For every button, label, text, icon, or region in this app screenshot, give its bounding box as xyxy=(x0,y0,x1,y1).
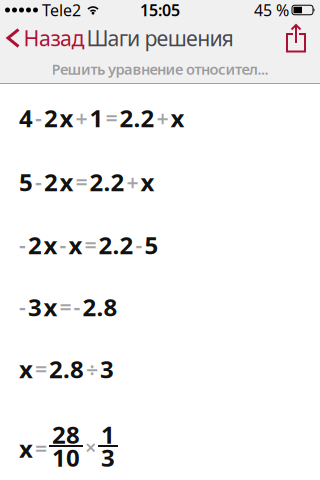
staticText: x xyxy=(140,166,154,198)
staticText: - xyxy=(73,293,80,321)
staticText: 45 % xyxy=(254,0,289,21)
staticText: 2 xyxy=(44,102,58,134)
staticText: 5 xyxy=(19,166,33,198)
staticText: = xyxy=(59,293,71,321)
staticText: x xyxy=(59,166,73,198)
staticText: + xyxy=(156,104,168,132)
staticText: = xyxy=(35,434,47,463)
staticText: × xyxy=(85,434,96,460)
staticText: 2.8 xyxy=(49,353,84,385)
staticText: x xyxy=(43,229,57,261)
staticText: x xyxy=(170,102,184,134)
staticText: 2 xyxy=(44,166,58,198)
staticText: - xyxy=(135,231,142,259)
staticText: 3 xyxy=(101,442,115,473)
staticText: - xyxy=(35,104,42,132)
staticText: 15:05 xyxy=(140,0,180,21)
staticText: = xyxy=(105,104,117,132)
staticText: 4 xyxy=(19,102,33,134)
button[interactable]: Назад xyxy=(0,24,84,52)
staticText: 2 xyxy=(28,229,42,261)
staticText: 1 xyxy=(89,102,103,134)
staticText: = xyxy=(84,231,96,259)
staticText: 2.2 xyxy=(89,166,124,198)
staticText: + xyxy=(75,104,87,132)
staticText: x xyxy=(68,229,82,261)
staticText: + xyxy=(126,168,138,196)
staticText: 2.2 xyxy=(119,102,154,134)
staticText: x xyxy=(19,353,33,385)
staticText: x xyxy=(19,433,33,464)
staticText: - xyxy=(59,231,66,259)
staticText: = xyxy=(35,355,47,383)
button[interactable]: Share xyxy=(282,24,320,52)
staticText: Назад xyxy=(23,24,84,52)
staticText: 5 xyxy=(144,229,158,261)
staticText: x xyxy=(59,102,73,134)
staticText: - xyxy=(35,168,42,196)
staticText: Шаги решения xyxy=(86,24,234,52)
staticText: 2.8 xyxy=(82,291,117,323)
staticText: 28 xyxy=(52,419,80,450)
staticText: - xyxy=(19,293,26,321)
staticText: - xyxy=(19,231,26,259)
staticText: Решить уравнение относител... xyxy=(51,59,268,79)
button[interactable]: Решить уравнение относител... xyxy=(0,56,320,83)
staticText: 1 xyxy=(101,419,115,450)
staticText: x xyxy=(43,291,57,323)
staticText: 3 xyxy=(100,353,114,385)
staticText: 3 xyxy=(28,291,42,323)
staticText: Tele2 xyxy=(42,0,81,21)
staticText: 2.2 xyxy=(98,229,133,261)
staticText: = xyxy=(75,168,87,196)
staticText: 10 xyxy=(52,442,80,473)
staticText: ÷ xyxy=(86,355,98,383)
